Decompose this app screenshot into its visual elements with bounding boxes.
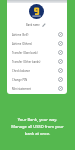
button[interactable]: Airtime (Others) — [7, 39, 67, 48]
staticText: Airtime (Self) — [12, 33, 29, 37]
button[interactable]: Change PIN — [7, 75, 67, 84]
staticText: Transfer (Own bank) — [12, 51, 38, 55]
staticText: Change PIN — [12, 78, 27, 82]
button[interactable]: Transfer (Own bank) — [7, 48, 67, 57]
button[interactable]: Check balance — [7, 66, 67, 75]
button[interactable]: Transfer (Other banks) — [7, 57, 67, 66]
button[interactable]: Mini statement — [7, 84, 67, 93]
other: Edit bank — [42, 23, 46, 27]
staticText: Mini statement — [12, 87, 32, 91]
staticText: Your Bank, your way. Manage all USSD fro… — [11, 117, 64, 137]
button[interactable]: Bank name — [7, 23, 66, 27]
staticText: Transfer (Other banks) — [12, 60, 41, 64]
button[interactable]: Airtime (Self) — [7, 30, 67, 39]
staticText: Airtime (Others) — [12, 42, 33, 46]
staticText: Bank name — [26, 23, 40, 27]
staticText: Check balance — [12, 69, 31, 73]
